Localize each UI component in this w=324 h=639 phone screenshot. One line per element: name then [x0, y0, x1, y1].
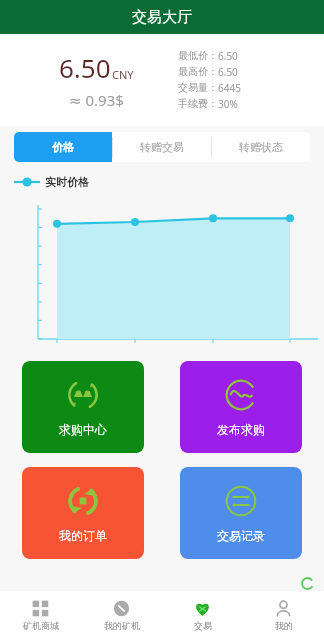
staticText: 我的订单: [59, 528, 107, 543]
staticText: 求购中心: [59, 422, 107, 437]
staticText: 交易大厅: [132, 8, 192, 27]
staticText: 6.50: [59, 50, 111, 85]
button[interactable]: 交易: [162, 591, 243, 639]
staticText: 最高价：: [178, 65, 218, 78]
button[interactable]: 交易记录: [180, 467, 302, 559]
button[interactable]: 转赠状态: [212, 132, 310, 162]
staticText: 我的矿机: [104, 620, 140, 631]
button[interactable]: 求购中心: [22, 361, 144, 453]
button[interactable]: 价格: [14, 132, 112, 162]
staticText: 转赠状态: [239, 140, 283, 154]
staticText: 交易量：: [178, 81, 218, 94]
button[interactable]: 矿机商城: [0, 591, 81, 639]
button[interactable]: 转赠交易: [113, 132, 211, 162]
staticText: 交易记录: [217, 528, 265, 543]
button[interactable]: 我的订单: [22, 467, 144, 559]
staticText: 6445: [218, 81, 241, 95]
staticText: 30%: [218, 97, 238, 111]
staticText: 最低价：: [178, 49, 218, 62]
staticText: CNY: [112, 67, 134, 82]
staticText: ≈ 0.93$: [69, 90, 124, 110]
button[interactable]: 我的矿机: [81, 591, 162, 639]
button[interactable]: 我的: [243, 591, 324, 639]
staticText: 价格: [52, 140, 74, 154]
staticText: 转赠交易: [140, 140, 184, 154]
staticText: 实时价格: [45, 175, 89, 189]
staticText: 交易: [194, 620, 212, 631]
staticText: 我的: [275, 620, 293, 631]
staticText: 6.50: [218, 65, 238, 79]
staticText: 矿机商城: [23, 620, 59, 631]
staticText: 发布求购: [217, 422, 265, 437]
staticText: 6.50: [218, 49, 238, 63]
button[interactable]: 发布求购: [180, 361, 302, 453]
staticText: 手续费：: [178, 97, 218, 110]
